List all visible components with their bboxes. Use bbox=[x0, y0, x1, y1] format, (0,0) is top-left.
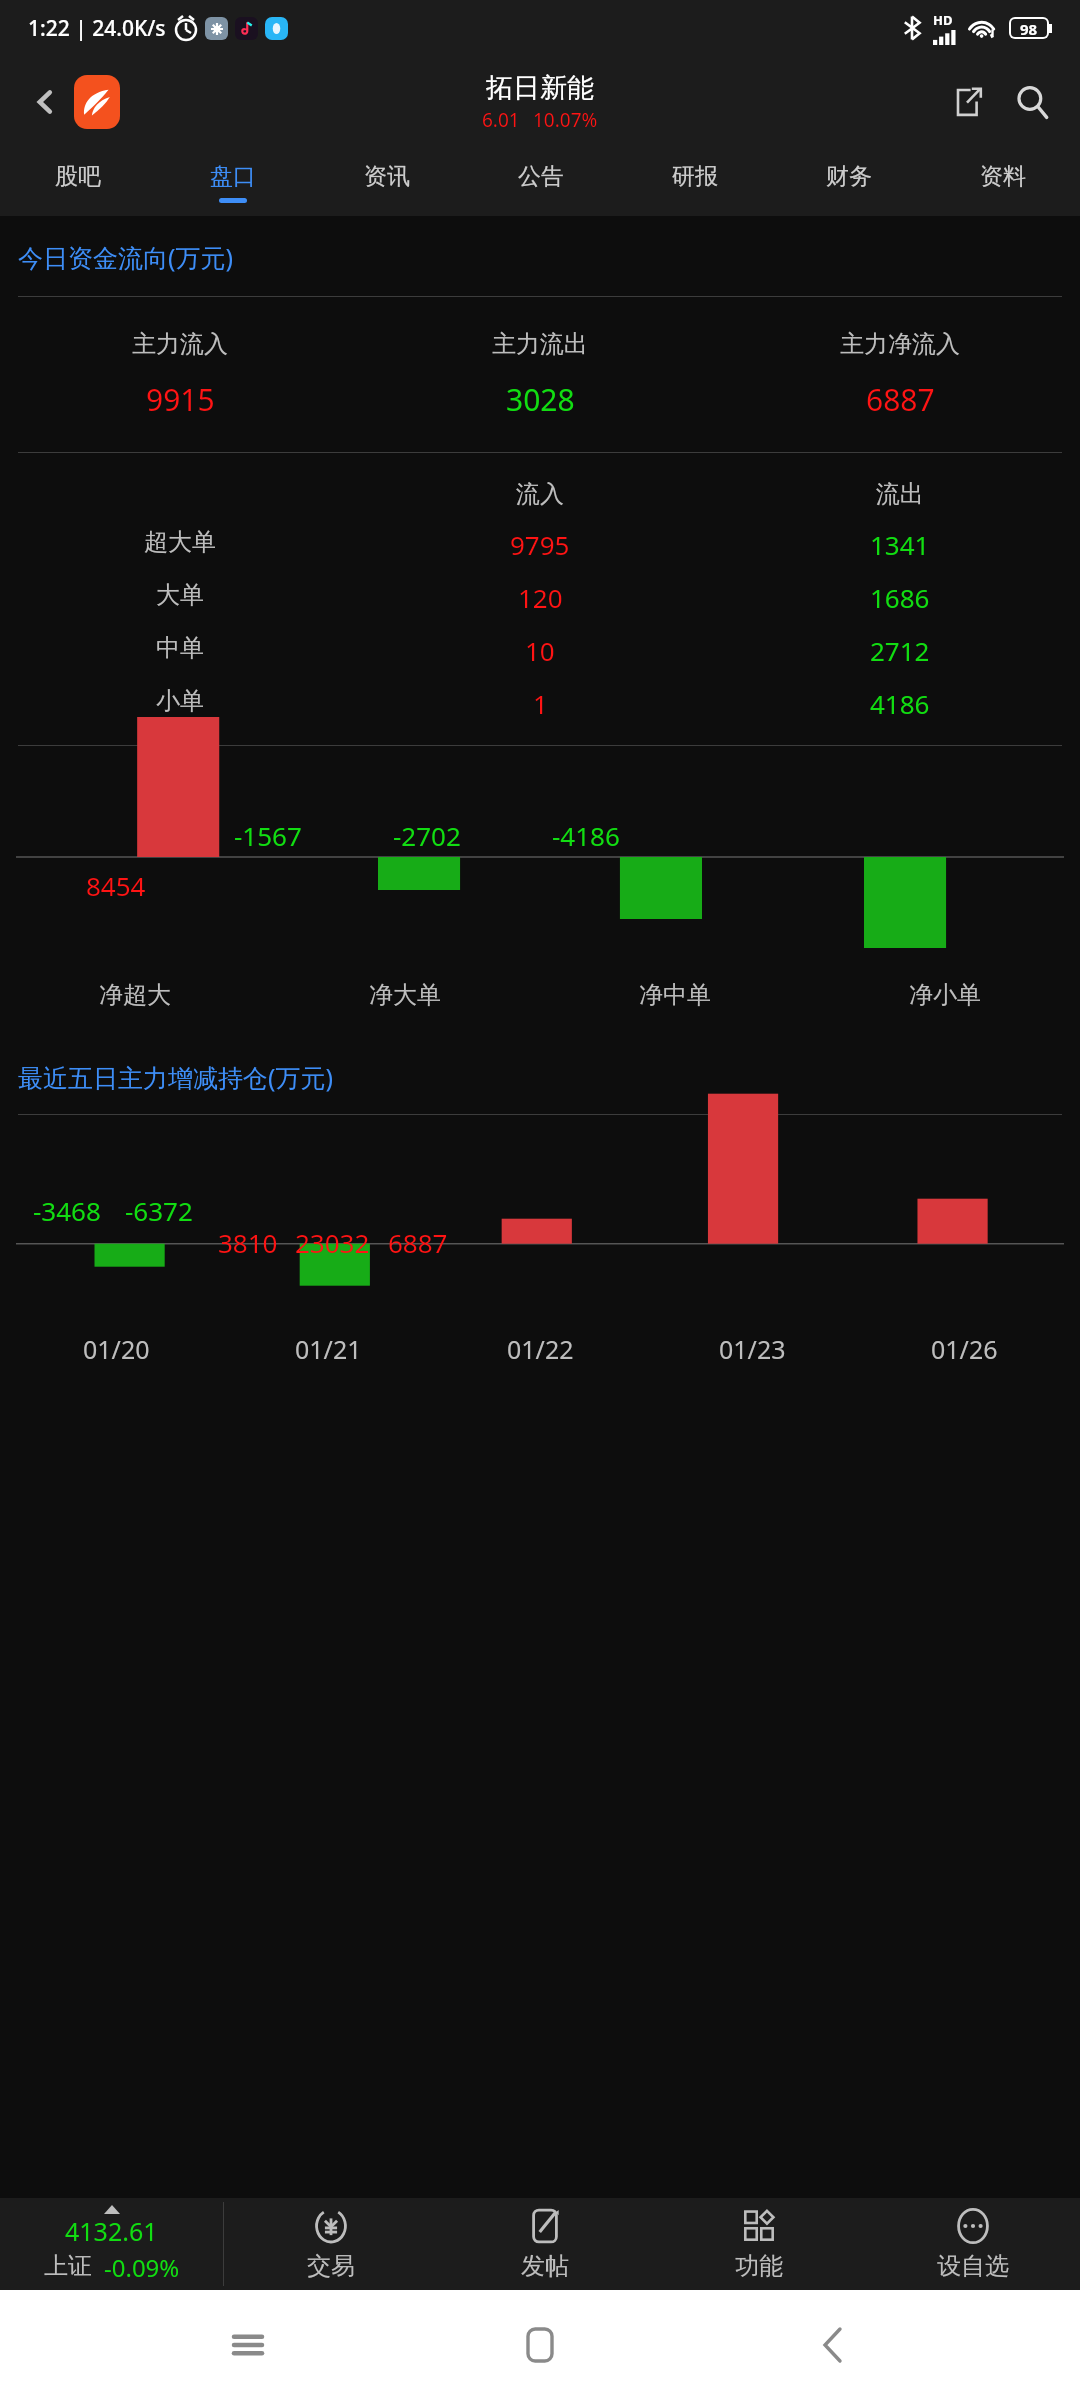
staticText: 流入 bbox=[516, 479, 564, 509]
staticText: 发帖 bbox=[521, 2251, 569, 2281]
staticText: 交易 bbox=[307, 2251, 355, 2281]
button[interactable]: App logo bbox=[74, 75, 120, 129]
staticText: 1:22 | 24.0K/s bbox=[28, 14, 166, 43]
button[interactable]: 研报 bbox=[618, 148, 772, 216]
button[interactable]: 功能 bbox=[652, 2198, 866, 2290]
staticText: 120 bbox=[518, 580, 563, 615]
staticText: 01/26 bbox=[931, 1332, 998, 1366]
button[interactable]: 资料 bbox=[926, 148, 1080, 216]
staticText: 10.07% bbox=[533, 107, 598, 133]
staticText: 01/23 bbox=[719, 1332, 786, 1366]
button[interactable]: 中单 bbox=[0, 633, 1080, 668]
staticText: 资讯 bbox=[364, 162, 410, 191]
staticText: 主力流入 bbox=[132, 329, 228, 359]
staticText: 功能 bbox=[735, 2251, 783, 2281]
button[interactable]: Recents bbox=[203, 2300, 293, 2390]
staticText: 10 bbox=[525, 633, 555, 668]
button[interactable]: 4132.61 bbox=[0, 2198, 223, 2290]
staticText: 6.01 bbox=[482, 107, 520, 133]
staticText: 9915 bbox=[146, 379, 215, 420]
staticText: 流出 bbox=[876, 479, 924, 509]
button[interactable]: 交易 bbox=[224, 2198, 438, 2290]
staticText: 2712 bbox=[870, 633, 930, 668]
staticText: 4132.61 bbox=[65, 2214, 158, 2248]
staticText: 6887 bbox=[866, 379, 935, 420]
staticText: -3468 bbox=[33, 1193, 101, 1228]
staticText: 6887 bbox=[388, 1225, 448, 1260]
staticText: 财务 bbox=[826, 162, 872, 191]
staticText: 1686 bbox=[870, 580, 930, 615]
staticText: 拓日新能 bbox=[486, 71, 594, 105]
staticText: 8454 bbox=[86, 868, 146, 903]
button[interactable]: 股吧 bbox=[0, 148, 155, 216]
staticText: 净小单 bbox=[909, 980, 981, 1010]
staticText: 净中单 bbox=[639, 980, 711, 1010]
staticText: 01/20 bbox=[83, 1332, 150, 1366]
staticText: 1341 bbox=[870, 527, 930, 562]
staticText: 公告 bbox=[518, 162, 564, 191]
staticText: 大单 bbox=[156, 580, 204, 610]
staticText: 98 bbox=[1020, 19, 1038, 37]
button[interactable]: Home bbox=[495, 2300, 585, 2390]
staticText: 今日资金流向(万元) bbox=[18, 240, 234, 274]
staticText: 23032 bbox=[295, 1225, 370, 1260]
staticText: 研报 bbox=[672, 162, 718, 191]
staticText: -1567 bbox=[234, 818, 302, 853]
staticText: 盘口 bbox=[210, 162, 256, 191]
button[interactable]: Back bbox=[22, 79, 68, 125]
staticText: 股吧 bbox=[55, 162, 101, 191]
staticText: 超大单 bbox=[144, 527, 216, 557]
staticText: 01/21 bbox=[295, 1332, 362, 1366]
staticText: 3028 bbox=[506, 379, 575, 420]
staticText: 上证 bbox=[44, 2251, 92, 2281]
staticText: 净超大 bbox=[99, 980, 171, 1010]
button[interactable]: Search bbox=[1004, 74, 1060, 130]
button[interactable]: 发帖 bbox=[438, 2198, 652, 2290]
staticText: -4186 bbox=[552, 818, 620, 853]
staticText: -6372 bbox=[125, 1193, 193, 1228]
button[interactable]: 大单 bbox=[0, 580, 1080, 615]
staticText: -0.09% bbox=[104, 2251, 180, 2284]
button[interactable]: 资讯 bbox=[310, 148, 464, 216]
staticText: -2702 bbox=[393, 818, 461, 853]
button[interactable]: 设自选 bbox=[866, 2198, 1080, 2290]
staticText: 主力净流入 bbox=[840, 329, 960, 359]
staticText: 资料 bbox=[980, 162, 1026, 191]
staticText: 中单 bbox=[156, 633, 204, 663]
staticText: 小单 bbox=[156, 686, 204, 716]
staticText: 1 bbox=[533, 686, 548, 721]
button[interactable]: 财务 bbox=[772, 148, 926, 216]
button[interactable]: 盘口 bbox=[155, 148, 310, 216]
button[interactable]: Share bbox=[940, 75, 994, 129]
button[interactable]: 公告 bbox=[464, 148, 618, 216]
button[interactable]: 小单 bbox=[0, 686, 1080, 721]
staticText: HD bbox=[933, 11, 953, 29]
staticText: 01/22 bbox=[507, 1332, 574, 1366]
staticText: 净大单 bbox=[369, 980, 441, 1010]
staticText: 主力流出 bbox=[492, 329, 588, 359]
button[interactable]: Back bbox=[788, 2300, 878, 2390]
staticText: 设自选 bbox=[937, 2251, 1009, 2281]
staticText: 最近五日主力增减持仓(万元) bbox=[18, 1060, 334, 1094]
staticText: 9795 bbox=[510, 527, 570, 562]
button[interactable]: 超大单 bbox=[0, 527, 1080, 562]
staticText: 3810 bbox=[218, 1225, 278, 1260]
staticText: 4186 bbox=[870, 686, 930, 721]
